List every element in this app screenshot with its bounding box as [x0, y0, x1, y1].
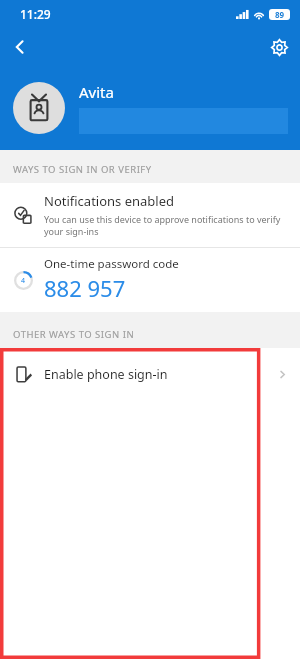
staticText: Notifications enabled — [44, 192, 175, 210]
button[interactable]: Enable phone sign-in — [0, 348, 300, 400]
staticText: One-time password code — [44, 256, 179, 272]
staticText: 4 — [21, 276, 26, 286]
staticText: WAYS TO SIGN IN OR VERIFY — [13, 163, 152, 176]
button[interactable]: 4 — [0, 248, 300, 312]
button[interactable]: Settings — [258, 28, 300, 66]
staticText: 11:29 — [20, 6, 51, 22]
button[interactable]: Back — [0, 28, 40, 66]
staticText: 882 957 — [44, 273, 126, 303]
button[interactable]: Notifications enabled — [0, 183, 300, 247]
staticText: 89 — [275, 9, 285, 20]
staticText: You can use this device to approve notif… — [44, 213, 288, 237]
staticText: Enable phone sign-in — [44, 366, 277, 383]
staticText: OTHER WAYS TO SIGN IN — [13, 328, 135, 341]
staticText: Avita — [79, 82, 114, 102]
